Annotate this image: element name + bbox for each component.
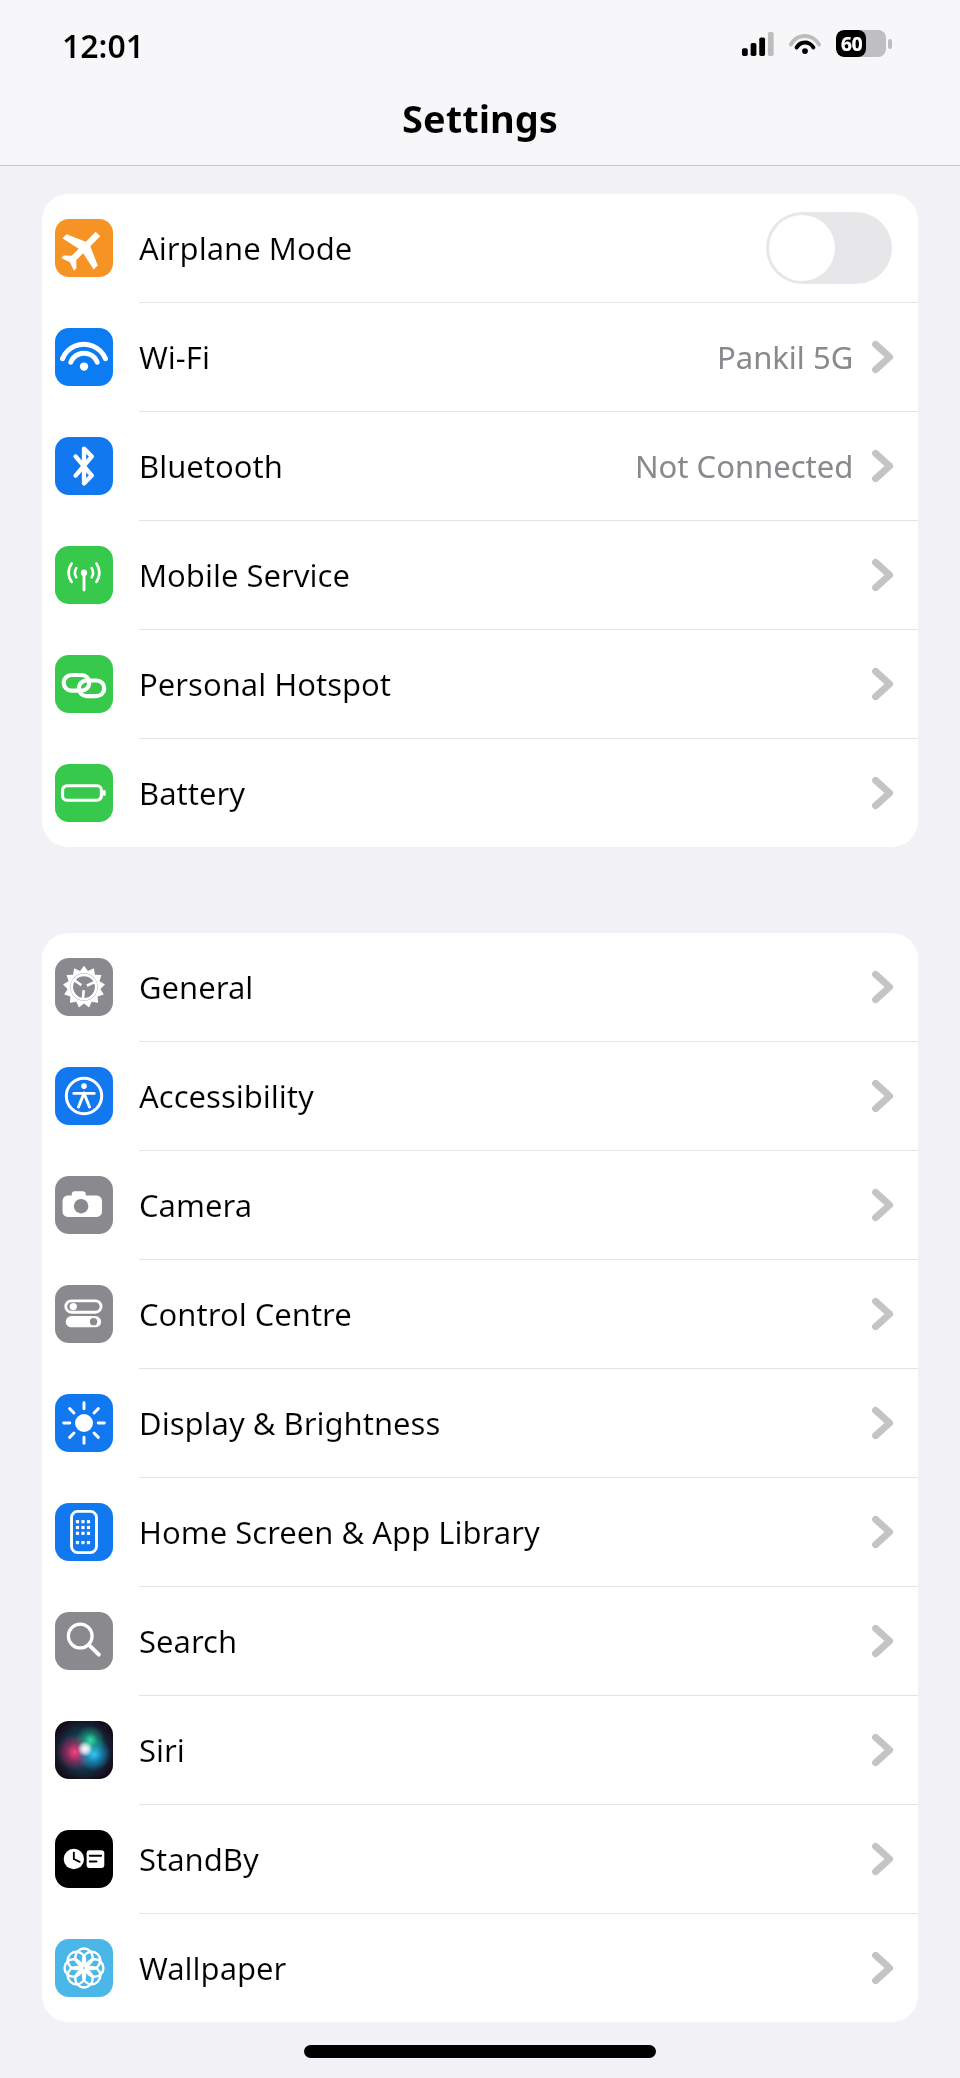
button[interactable]: Accessibility [42, 1042, 918, 1151]
staticText: Wallpaper [139, 1947, 872, 1989]
staticText: Settings [0, 92, 960, 144]
button[interactable]: StandBy [42, 1805, 918, 1914]
staticText: Wi-Fi [139, 336, 717, 378]
staticText: Home Screen & App Library [139, 1511, 872, 1553]
button[interactable]: Siri [42, 1696, 918, 1805]
staticText: Not Connected [635, 445, 854, 487]
button[interactable]: Camera [42, 1151, 918, 1260]
staticText: Airplane Mode [139, 227, 766, 269]
button[interactable]: Display & Brightness [42, 1369, 918, 1478]
button[interactable]: Mobile Service [42, 521, 918, 630]
staticText: Camera [139, 1184, 872, 1226]
staticText: StandBy [139, 1838, 872, 1880]
button[interactable]: Airplane Mode toggle [766, 212, 892, 284]
button[interactable]: Home Screen & App Library [42, 1478, 918, 1587]
staticText: Battery [139, 772, 872, 814]
button[interactable]: Wallpaper [42, 1914, 918, 2022]
staticText: General [139, 966, 872, 1008]
staticText: Control Centre [139, 1293, 872, 1335]
staticText: Pankil 5G [717, 336, 854, 378]
staticText: Display & Brightness [139, 1402, 872, 1444]
staticText: 12:01 [62, 24, 145, 68]
button[interactable]: Airplane Mode [42, 194, 918, 303]
button[interactable]: Control Centre [42, 1260, 918, 1369]
button[interactable]: Bluetooth [42, 412, 918, 521]
staticText: Personal Hotspot [139, 663, 872, 705]
button[interactable]: Personal Hotspot [42, 630, 918, 739]
staticText: Mobile Service [139, 554, 872, 596]
button[interactable]: Search [42, 1587, 918, 1696]
button[interactable]: Wi-Fi [42, 303, 918, 412]
button[interactable]: Battery [42, 739, 918, 847]
staticText: Accessibility [139, 1075, 872, 1117]
staticText: Siri [139, 1729, 872, 1771]
staticText: Bluetooth [139, 445, 635, 487]
button[interactable]: General [42, 933, 918, 1042]
staticText: Search [139, 1620, 872, 1662]
staticText: 60 [841, 31, 863, 57]
